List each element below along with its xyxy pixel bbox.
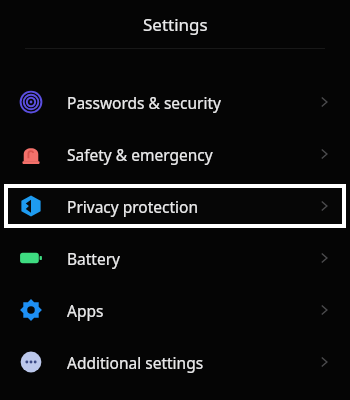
staticText: Safety & emergency: [67, 144, 213, 165]
button[interactable]: Additional settings: [0, 336, 350, 388]
staticText: Additional settings: [67, 352, 204, 373]
button[interactable]: Privacy protection: [0, 180, 350, 232]
staticText: Apps: [67, 300, 104, 321]
staticText: Passwords & security: [67, 92, 222, 113]
staticText: Settings: [143, 13, 208, 36]
staticText: Battery: [67, 248, 121, 269]
button[interactable]: Safety & emergency: [0, 128, 350, 180]
button[interactable]: Battery: [0, 232, 350, 284]
staticText: Privacy protection: [67, 196, 199, 217]
button[interactable]: Passwords & security: [0, 76, 350, 128]
button[interactable]: Apps: [0, 284, 350, 336]
